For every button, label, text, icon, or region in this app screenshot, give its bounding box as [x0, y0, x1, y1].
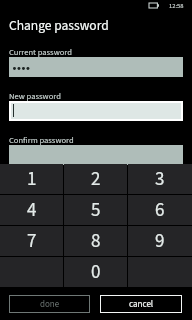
staticText: Current password	[9, 46, 72, 58]
staticText: 8	[91, 228, 101, 255]
button[interactable]: 1	[0, 164, 63, 194]
staticText: 3	[155, 166, 165, 193]
staticText: 12:58	[169, 1, 184, 10]
button[interactable]: 9	[128, 226, 192, 256]
staticText: 2	[91, 166, 101, 193]
button[interactable]	[11, 103, 181, 119]
staticText: New password	[9, 90, 61, 102]
button[interactable]: 5	[64, 195, 127, 225]
button[interactable]	[9, 57, 183, 77]
button[interactable]: 4	[0, 195, 63, 225]
staticText: 1	[27, 166, 37, 193]
button[interactable]: 8	[64, 226, 127, 256]
other: Battery	[149, 3, 159, 8]
staticText: 9	[155, 228, 165, 255]
button[interactable]: 0	[64, 257, 127, 287]
button[interactable]: 7	[0, 226, 63, 256]
staticText: done	[40, 298, 60, 311]
staticText: 7	[27, 228, 37, 255]
button[interactable]: 6	[128, 195, 192, 225]
button[interactable]: 2	[64, 164, 127, 194]
staticText: 5	[91, 197, 101, 224]
button[interactable]	[9, 145, 183, 165]
staticText: 0	[91, 259, 101, 286]
button[interactable]: 3	[128, 164, 192, 194]
staticText: 4	[27, 197, 37, 224]
button[interactable]: done	[10, 296, 89, 312]
staticText: 6	[155, 197, 165, 224]
staticText: Confirm password	[9, 134, 74, 146]
button[interactable]: cancel	[101, 296, 181, 312]
staticText: Change password	[9, 16, 109, 35]
staticText: cancel	[129, 298, 154, 311]
